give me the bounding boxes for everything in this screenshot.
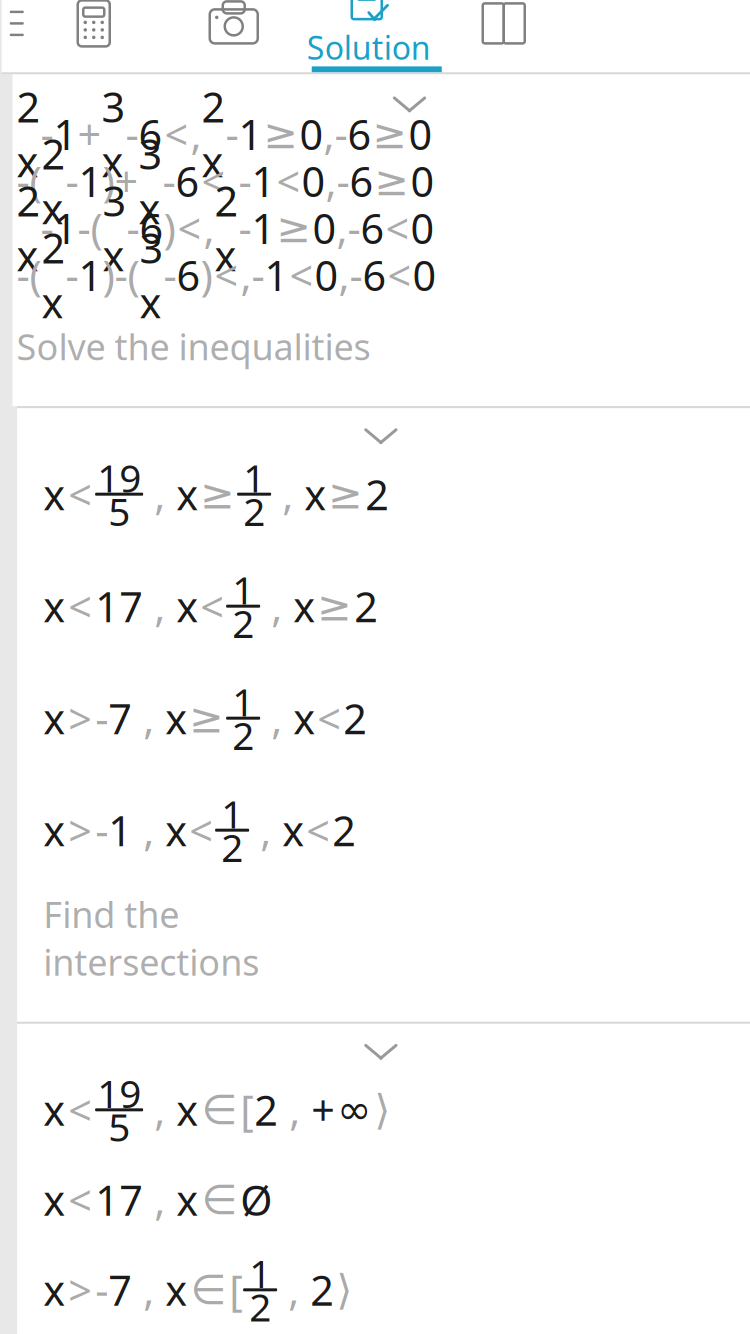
staticText: -: [114, 247, 127, 302]
staticText: >: [68, 803, 92, 858]
staticText: ,: [143, 579, 176, 634]
staticText: 0: [314, 247, 338, 302]
staticText: ,: [143, 467, 176, 522]
staticText: ⟩: [336, 1266, 352, 1313]
staticText: ≥: [189, 695, 224, 742]
button[interactable]: Menu: [2, 0, 24, 66]
staticText: ): [163, 200, 175, 255]
staticText: -: [16, 153, 29, 208]
staticText: 1: [251, 200, 275, 255]
staticText: -: [65, 153, 78, 208]
staticText: -: [95, 1262, 108, 1317]
staticText: 1: [238, 106, 262, 161]
staticText: x: [165, 803, 187, 858]
staticText: <: [201, 153, 225, 208]
staticText: x: [43, 1172, 65, 1227]
staticText: ≥: [276, 204, 311, 251]
staticText: x: [43, 467, 65, 522]
staticText: 2: [332, 803, 356, 858]
staticText: 2x: [214, 173, 238, 283]
staticText: -: [336, 153, 349, 208]
staticText: ∞: [337, 1086, 371, 1133]
staticText: 6: [175, 153, 199, 208]
button[interactable]: Collapse step: [354, 414, 408, 458]
staticText: 1: [243, 452, 265, 503]
staticText: -: [65, 247, 78, 302]
staticText: 17: [95, 579, 143, 634]
staticText: +: [77, 106, 101, 161]
staticText: ,: [325, 99, 336, 263]
staticText: ∈: [190, 1266, 226, 1313]
staticText: [: [229, 1262, 243, 1317]
staticText: (: [29, 153, 41, 208]
staticText: -: [334, 106, 347, 161]
button[interactable]: Calculator: [24, 0, 164, 66]
staticText: 19: [97, 452, 141, 503]
staticText: <: [200, 579, 224, 634]
staticText: 2: [354, 579, 378, 634]
staticText: ,: [323, 52, 334, 216]
staticText: x: [43, 803, 65, 858]
button[interactable]: Collapse step: [354, 1030, 408, 1074]
staticText: x: [176, 467, 198, 522]
staticText: ,: [336, 146, 347, 310]
staticText: 0: [410, 153, 434, 208]
staticText: 6: [360, 200, 384, 255]
staticText: ∈: [201, 1176, 237, 1223]
staticText: -: [349, 247, 362, 302]
staticText: 1: [232, 676, 254, 727]
staticText: <: [306, 803, 330, 858]
staticText: 6: [139, 200, 163, 255]
staticText: <: [317, 691, 341, 746]
staticText: 1: [249, 1247, 271, 1299]
staticText: 1: [78, 153, 102, 208]
staticText: ): [200, 247, 212, 302]
staticText: 2: [232, 597, 254, 648]
staticText: x: [165, 1262, 187, 1317]
staticText: 1: [53, 106, 77, 161]
staticText: -: [251, 247, 264, 302]
staticText: x: [176, 1082, 198, 1137]
staticText: 1: [78, 247, 102, 302]
staticText: 1: [221, 788, 243, 839]
staticText: -: [225, 106, 238, 161]
staticText: ,: [190, 52, 201, 216]
button[interactable]: Solution: [304, 0, 434, 66]
staticText: ,: [203, 146, 214, 310]
staticText: 17: [95, 1172, 143, 1227]
staticText: -: [238, 153, 251, 208]
button[interactable]: Camera: [164, 0, 304, 66]
staticText: ): [102, 153, 114, 208]
staticText: 2x: [16, 79, 40, 189]
staticText: 0: [299, 106, 323, 161]
staticText: 2: [232, 709, 254, 760]
staticText: -: [40, 200, 53, 255]
button[interactable]: Textbook: [434, 0, 574, 66]
staticText: 2: [310, 1262, 334, 1317]
staticText: -: [125, 106, 138, 161]
staticText: ,: [143, 1172, 176, 1227]
staticText: 6: [347, 106, 371, 161]
staticText: >: [68, 691, 92, 746]
staticText: 5: [108, 485, 130, 536]
staticText: x: [43, 1262, 65, 1317]
staticText: 0: [410, 200, 434, 255]
staticText: x: [176, 1172, 198, 1227]
button[interactable]: Collapse step: [382, 82, 436, 126]
staticText: 2x: [41, 220, 65, 330]
staticText: 19: [97, 1067, 141, 1119]
staticText: 0: [412, 247, 436, 302]
staticText: -: [347, 200, 360, 255]
staticText: x: [293, 691, 315, 746]
staticText: 1: [264, 247, 288, 302]
staticText: ,: [227, 99, 238, 263]
staticText: -: [95, 803, 108, 858]
staticText: ,: [338, 193, 349, 357]
staticText: 2x: [201, 79, 225, 189]
staticText: 1: [53, 200, 77, 255]
staticText: ,: [271, 467, 304, 522]
staticText: ⟩: [374, 1086, 390, 1133]
staticText: x: [304, 467, 326, 522]
staticText: 6: [349, 153, 373, 208]
staticText: ,: [132, 691, 165, 746]
